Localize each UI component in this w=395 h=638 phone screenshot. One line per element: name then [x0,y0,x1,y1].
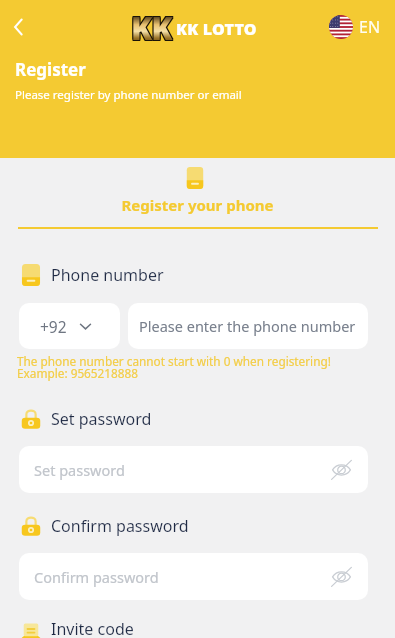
staticText: KK [132,8,173,50]
button[interactable]: Toggle password visibility [328,456,355,483]
staticText: Example: 9565218888 [17,365,139,381]
staticText: Register [15,58,86,81]
button[interactable]: Toggle password visibility [328,563,355,590]
button[interactable]: Phone number [20,264,164,286]
button[interactable]: Confirm password [19,553,368,600]
button[interactable]: +92 [19,303,120,349]
staticText: KK [130,6,171,48]
staticText: KK [130,8,171,50]
staticText: KK [131,8,172,50]
staticText: KK [132,6,173,48]
button[interactable]: Set password [20,408,152,430]
button[interactable]: Confirm password [20,515,189,537]
button[interactable]: Back [2,10,36,44]
staticText: Please enter the phone number [139,316,356,336]
staticText: Phone number [51,264,164,286]
staticText: KK [131,6,172,48]
staticText: Set password [51,408,152,430]
staticText: Invite code [51,618,134,638]
staticText: Please register by phone number or email [15,87,242,103]
staticText: KK [132,7,173,49]
staticText: Register your phone [0,195,395,215]
button[interactable]: Set password [19,446,368,493]
staticText: The phone number cannot start with 0 whe… [17,353,331,369]
staticText: +92 [40,316,67,337]
button[interactable]: Please enter the phone number [128,303,368,349]
staticText: KK [130,7,171,49]
staticText: EN [359,16,381,38]
staticText: Set password [34,460,125,480]
staticText: KK LOTTO [176,18,257,40]
staticText: KK [131,7,172,49]
button[interactable]: Language EN [329,15,381,39]
button[interactable]: Invite code [20,618,134,638]
staticText: Confirm password [34,567,159,587]
staticText: Confirm password [51,515,189,537]
